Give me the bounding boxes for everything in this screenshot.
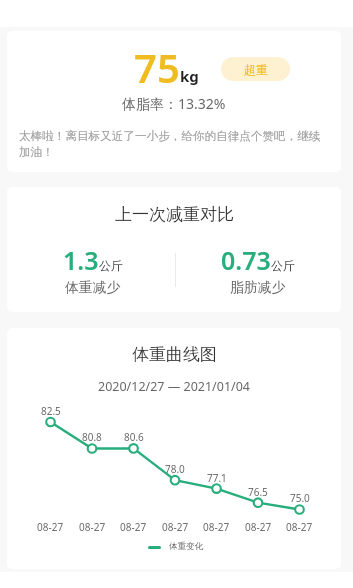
staticText: 08-27 (37, 520, 64, 534)
staticText: 08-27 (162, 520, 189, 534)
staticText: 体重减少 (65, 279, 121, 296)
staticText: 08-27 (203, 520, 230, 534)
staticText: 80.6 (124, 430, 144, 444)
staticText: 体重曲线图 (132, 344, 217, 365)
staticText: 2020/12/27 — 2021/01/04 (98, 378, 251, 395)
staticText: kg (180, 66, 199, 86)
staticText: 超重 (244, 62, 268, 77)
staticText: 82.5 (41, 404, 61, 418)
staticText: 太棒啦！离目标又近了一小步，给你的自律点个赞吧，继续加油！ (19, 129, 331, 159)
staticText: 08-27 (79, 520, 106, 534)
staticText: 80.8 (82, 430, 102, 444)
staticText: 75.0 (290, 491, 310, 505)
staticText: 75 (134, 40, 180, 94)
staticText: 78.0 (165, 462, 185, 476)
staticText: 公斤 (99, 258, 123, 273)
staticText: 0.73 (221, 243, 271, 277)
staticText: 08-27 (245, 520, 272, 534)
staticText: 1.3 (63, 243, 99, 277)
staticText: 76.5 (248, 485, 268, 499)
button[interactable]: 超重 (221, 57, 290, 81)
staticText: 体重变化 (169, 541, 203, 552)
staticText: 08-27 (286, 520, 313, 534)
staticText: 体脂率：13.32% (122, 94, 226, 113)
staticText: 脂肪减少 (230, 279, 286, 296)
staticText: 08-27 (120, 520, 147, 534)
staticText: 77.1 (207, 471, 227, 485)
staticText: 上一次减重对比 (115, 204, 234, 225)
staticText: 公斤 (271, 258, 295, 273)
